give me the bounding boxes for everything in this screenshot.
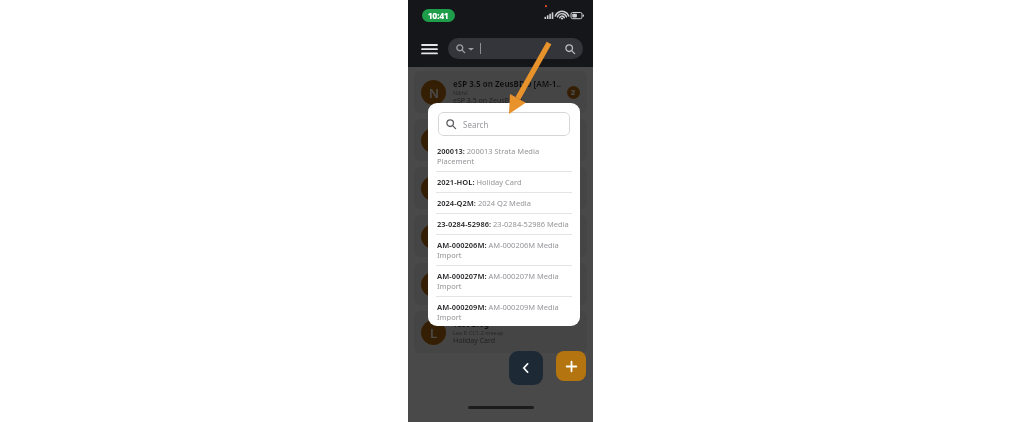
button[interactable]: 23-0284-52986: 23-0284-52986 Media xyxy=(428,214,580,234)
staticText: Test Blog xyxy=(453,318,490,329)
staticText: 2024-Q2M: 2024 Q2 Media xyxy=(437,198,531,208)
button[interactable]: Search xyxy=(438,112,570,136)
staticText: Campaign entry xyxy=(453,270,517,281)
button[interactable]: B xyxy=(414,167,587,209)
button[interactable]: N xyxy=(414,71,587,113)
staticText: C xyxy=(429,228,438,246)
staticText: 2021-HOL: Holiday Card xyxy=(437,177,522,187)
staticText: A xyxy=(429,132,438,150)
staticText: eSP 3.5 on ZeusBD00 xyxy=(453,96,523,106)
staticText: Author name xyxy=(453,281,488,288)
button[interactable]: Back xyxy=(509,351,543,385)
button[interactable]: Add xyxy=(556,351,586,381)
staticText: 2 xyxy=(571,88,576,98)
staticText: B xyxy=(429,180,438,198)
staticText: Detail line xyxy=(453,240,486,250)
button[interactable]: L xyxy=(414,311,587,353)
button[interactable]: AM-000207M: AM-000207M Media Import xyxy=(428,266,580,296)
staticText: Detail line xyxy=(453,144,486,154)
staticText: 10:41 xyxy=(428,10,449,21)
staticText: Author name xyxy=(453,233,488,240)
staticText: 200013: 200013 Strata Media Placement xyxy=(437,146,571,166)
button[interactable]: AM-000206M: AM-000206M Media Import xyxy=(428,235,580,265)
staticText: Lea P. CC1-2 meeap xyxy=(453,329,504,336)
staticText: Campaign entry xyxy=(453,126,517,137)
staticText: L xyxy=(430,324,437,342)
staticText: eSP 3.5 on ZeusBD 0 [AM-1.. xyxy=(453,78,561,89)
staticText: Campaign entry xyxy=(453,174,517,185)
button[interactable]: 200013: 200013 Strata Media Placement xyxy=(428,141,580,171)
button[interactable]: 2021-HOL: Holiday Card xyxy=(428,172,580,192)
staticText: AM-000206M: AM-000206M Media Import xyxy=(437,240,571,260)
staticText: Detail line xyxy=(453,288,486,298)
button[interactable] xyxy=(448,38,583,59)
staticText: Holiday Card xyxy=(453,336,496,346)
staticText: Detail line xyxy=(453,192,486,202)
staticText: Nikhil xyxy=(453,89,468,96)
staticText: 23-0284-52986: 23-0284-52986 Media xyxy=(437,219,569,229)
staticText: AM-000207M: AM-000207M Media Import xyxy=(437,271,571,291)
button[interactable]: C xyxy=(414,215,587,257)
button[interactable]: D xyxy=(414,263,587,305)
button[interactable]: Menu xyxy=(418,38,440,60)
staticText: N xyxy=(429,84,439,102)
button[interactable]: AM-000209M: AM-000209M Media Import xyxy=(428,297,580,326)
staticText: D xyxy=(429,276,439,294)
staticText: AM-000209M: AM-000209M Media Import xyxy=(437,302,571,321)
button[interactable]: A xyxy=(414,119,587,161)
button[interactable]: 2024-Q2M: 2024 Q2 Media xyxy=(428,193,580,213)
staticText: Campaign entry xyxy=(453,222,517,233)
staticText: Search xyxy=(463,119,489,130)
